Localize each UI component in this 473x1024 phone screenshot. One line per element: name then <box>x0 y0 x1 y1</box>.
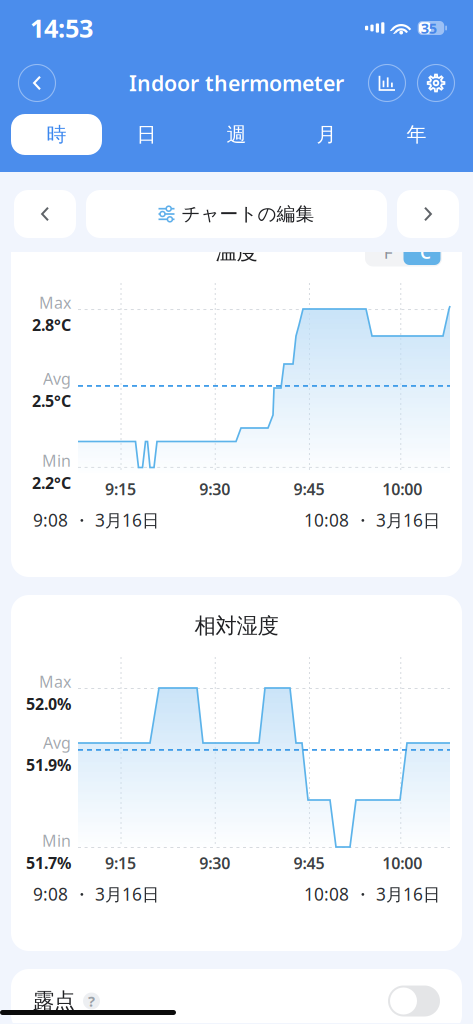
staticText: 14:53 <box>30 11 93 45</box>
button[interactable]: Statistics <box>367 63 407 103</box>
button[interactable]: Settings <box>416 63 456 103</box>
staticText: 2.5°C <box>32 390 71 411</box>
button[interactable]: ℉ <box>365 237 442 266</box>
staticText: 10:08 ・ 3月16日 <box>304 508 440 531</box>
staticText: 9:08 ・ 3月16日 <box>33 882 159 905</box>
staticText: Min <box>42 830 71 851</box>
button[interactable]: チャートの編集 <box>86 190 387 238</box>
staticText: 10:00 <box>382 852 422 874</box>
staticText: ? <box>88 991 95 1011</box>
staticText: 9:45 <box>293 478 324 500</box>
staticText: 9:30 <box>199 852 230 874</box>
staticText: Max <box>39 292 71 313</box>
button[interactable]: 週 <box>191 114 281 155</box>
staticText: 2.2°C <box>32 472 71 493</box>
staticText: Max <box>39 671 71 692</box>
staticText: 52.0% <box>26 693 71 714</box>
button[interactable]: 日 <box>101 114 191 155</box>
staticText: 9:08 ・ 3月16日 <box>33 508 159 531</box>
button[interactable]: Back <box>17 63 57 103</box>
staticText: 9:45 <box>293 852 324 874</box>
staticText: Indoor thermometer <box>129 69 344 97</box>
staticText: 2.8°C <box>32 314 71 335</box>
staticText: 10:00 <box>382 478 422 500</box>
staticText: 9:15 <box>105 478 136 500</box>
staticText: 日 <box>136 122 156 147</box>
staticText: ℉ <box>377 240 392 263</box>
staticText: Avg <box>43 368 71 389</box>
staticText: 露点 <box>33 988 75 1014</box>
staticText: 9:15 <box>105 852 136 874</box>
staticText: 月 <box>316 122 336 147</box>
staticText: 51.7% <box>26 852 71 873</box>
staticText: 51.9% <box>26 754 71 775</box>
staticText: ℃ <box>413 240 430 263</box>
button[interactable]: 年 <box>371 114 461 155</box>
staticText: 相対湿度 <box>194 613 278 639</box>
staticText: 年 <box>406 122 426 147</box>
button[interactable]: 月 <box>281 114 371 155</box>
staticText: 週 <box>226 122 246 147</box>
button[interactable]: 露点 <box>11 969 462 1024</box>
staticText: 35 <box>421 18 437 38</box>
button[interactable]: Next <box>397 190 459 238</box>
staticText: 9:30 <box>199 478 230 500</box>
staticText: 時 <box>46 122 66 147</box>
button[interactable]: Previous <box>14 190 76 238</box>
staticText: 温度 <box>215 239 257 265</box>
staticText: Min <box>42 450 71 471</box>
staticText: Avg <box>43 732 71 753</box>
staticText: チャートの編集 <box>181 202 314 225</box>
staticText: 10:08 ・ 3月16日 <box>304 882 440 905</box>
button[interactable]: 時 <box>11 114 101 155</box>
